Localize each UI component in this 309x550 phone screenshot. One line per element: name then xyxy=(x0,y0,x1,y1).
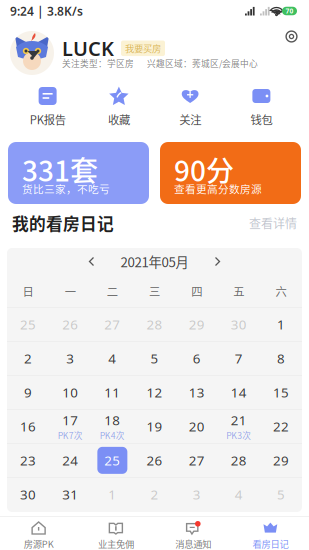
button[interactable]: 22 xyxy=(260,410,302,443)
staticText: 23 xyxy=(20,451,36,469)
staticText: 9 xyxy=(24,383,32,401)
button[interactable]: 29 xyxy=(176,308,218,341)
button[interactable]: 24 xyxy=(49,444,91,477)
staticText: 9:24 | 3.8K/s xyxy=(10,3,83,19)
button[interactable]: 27 xyxy=(91,308,133,341)
button[interactable]: 6 xyxy=(176,342,218,375)
button[interactable]: 27 xyxy=(176,444,218,477)
button[interactable]: 10 xyxy=(49,376,91,409)
button[interactable]: 下个月 xyxy=(210,254,224,268)
button[interactable]: 8 xyxy=(260,342,302,375)
staticText: 26 xyxy=(146,451,162,469)
button[interactable]: 业主免佣 xyxy=(77,517,154,550)
staticText: 25 xyxy=(104,451,120,469)
staticText: 兴趣区域：莠城区/会展中心 xyxy=(147,57,258,69)
button[interactable]: 钱包 xyxy=(226,78,297,130)
staticText: 20 xyxy=(189,417,205,435)
staticText: 24 xyxy=(62,451,78,469)
staticText: 22 xyxy=(273,417,289,435)
button[interactable]: 看房日记 xyxy=(232,517,309,550)
button[interactable]: 331套 xyxy=(8,142,149,204)
staticText: 5 xyxy=(277,485,285,503)
staticText: 8 xyxy=(277,349,285,367)
staticText: 16 xyxy=(20,417,36,435)
staticText: 消息通知 xyxy=(175,537,211,550)
staticText: 五 xyxy=(233,283,244,299)
button[interactable]: 房源PK xyxy=(0,517,77,550)
staticText: 1 xyxy=(108,485,116,503)
button[interactable]: 2 xyxy=(7,342,49,375)
button[interactable]: 26 xyxy=(133,444,175,477)
button[interactable]: 11 xyxy=(91,376,133,409)
button[interactable]: 16 xyxy=(7,410,49,443)
button[interactable]: 关注 xyxy=(154,78,226,130)
button[interactable]: 9 xyxy=(7,376,49,409)
staticText: 钱包 xyxy=(250,111,272,127)
staticText: 28 xyxy=(231,451,247,469)
button[interactable]: 23 xyxy=(7,444,49,477)
button[interactable]: 28 xyxy=(218,444,260,477)
button[interactable]: 收藏 xyxy=(83,78,154,130)
button[interactable]: 1 xyxy=(91,478,133,511)
button[interactable]: 1 xyxy=(260,308,302,341)
button[interactable]: 26 xyxy=(49,308,91,341)
button[interactable]: 4 xyxy=(218,478,260,511)
staticText: 15 xyxy=(273,383,289,401)
button[interactable]: 14 xyxy=(218,376,260,409)
staticText: 17 xyxy=(62,411,78,429)
staticText: 2 xyxy=(150,485,158,503)
staticText: 70 xyxy=(285,7,293,15)
staticText: 18 xyxy=(104,411,120,429)
button[interactable]: 25 xyxy=(91,444,133,477)
button[interactable]: 31 xyxy=(49,478,91,511)
staticText: 2021年05月 xyxy=(120,252,188,271)
staticText: 房源PK xyxy=(24,537,54,550)
button[interactable]: PK报告 xyxy=(12,78,83,130)
staticText: 我要买房 xyxy=(125,41,161,55)
staticText: 日 xyxy=(23,283,34,299)
button[interactable]: 消息通知 xyxy=(154,517,232,550)
button[interactable]: 12 xyxy=(133,376,175,409)
button[interactable]: 25 xyxy=(7,308,49,341)
staticText: 我的看房日记 xyxy=(12,211,114,235)
button[interactable]: 90分 xyxy=(160,142,301,204)
staticText: 六 xyxy=(275,283,286,299)
button[interactable]: 13 xyxy=(176,376,218,409)
button[interactable]: 设置 xyxy=(284,29,299,44)
button[interactable]: 30 xyxy=(218,308,260,341)
staticText: PK4次 xyxy=(100,429,125,441)
button[interactable]: 19 xyxy=(133,410,175,443)
button[interactable]: 上个月 xyxy=(84,254,98,268)
staticText: 12 xyxy=(146,383,162,401)
staticText: 查看更高分数房源 xyxy=(174,181,262,196)
button[interactable]: 21 xyxy=(218,410,260,443)
button[interactable]: 30 xyxy=(7,478,49,511)
staticText: 1 xyxy=(277,315,285,333)
button[interactable]: 20 xyxy=(176,410,218,443)
staticText: 关注 xyxy=(179,111,201,127)
button[interactable]: 4 xyxy=(91,342,133,375)
button[interactable]: 2 xyxy=(133,478,175,511)
button[interactable]: 17 xyxy=(49,410,91,443)
button[interactable]: 18 xyxy=(91,410,133,443)
button[interactable]: 29 xyxy=(260,444,302,477)
staticText: PK7次 xyxy=(58,429,83,441)
staticText: 4 xyxy=(235,485,243,503)
staticText: 三 xyxy=(149,283,160,299)
button[interactable]: 15 xyxy=(260,376,302,409)
staticText: 30 xyxy=(231,315,247,333)
staticText: 19 xyxy=(146,417,162,435)
button[interactable]: 7 xyxy=(218,342,260,375)
staticText: 29 xyxy=(273,451,289,469)
staticText: 业主免佣 xyxy=(98,537,134,550)
staticText: 21 xyxy=(231,411,247,429)
button[interactable]: 3 xyxy=(49,342,91,375)
button[interactable]: 5 xyxy=(260,478,302,511)
button[interactable]: 5 xyxy=(133,342,175,375)
staticText: 10 xyxy=(62,383,78,401)
button[interactable]: 3 xyxy=(176,478,218,511)
staticText: 二 xyxy=(107,283,118,299)
staticText: 3 xyxy=(193,485,201,503)
button[interactable]: 查看详情 xyxy=(249,214,297,232)
button[interactable]: 28 xyxy=(133,308,175,341)
